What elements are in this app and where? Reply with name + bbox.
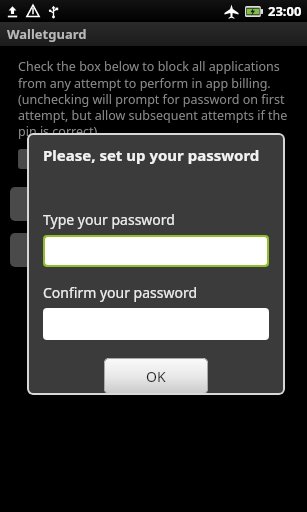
button[interactable]	[45, 237, 267, 265]
staticText: Block each attempt	[46, 150, 164, 168]
staticText: Please, set up your password	[43, 145, 260, 165]
staticText: 23:00	[268, 2, 302, 20]
button[interactable]: OK	[104, 358, 208, 394]
staticText: Confirm your password	[43, 283, 198, 302]
button[interactable]	[43, 308, 269, 340]
staticText: Walletguard	[7, 25, 87, 43]
staticText: Check the box below to block all applica…	[18, 58, 295, 139]
staticText: Type your password	[43, 210, 175, 229]
staticText: OK	[146, 367, 166, 386]
